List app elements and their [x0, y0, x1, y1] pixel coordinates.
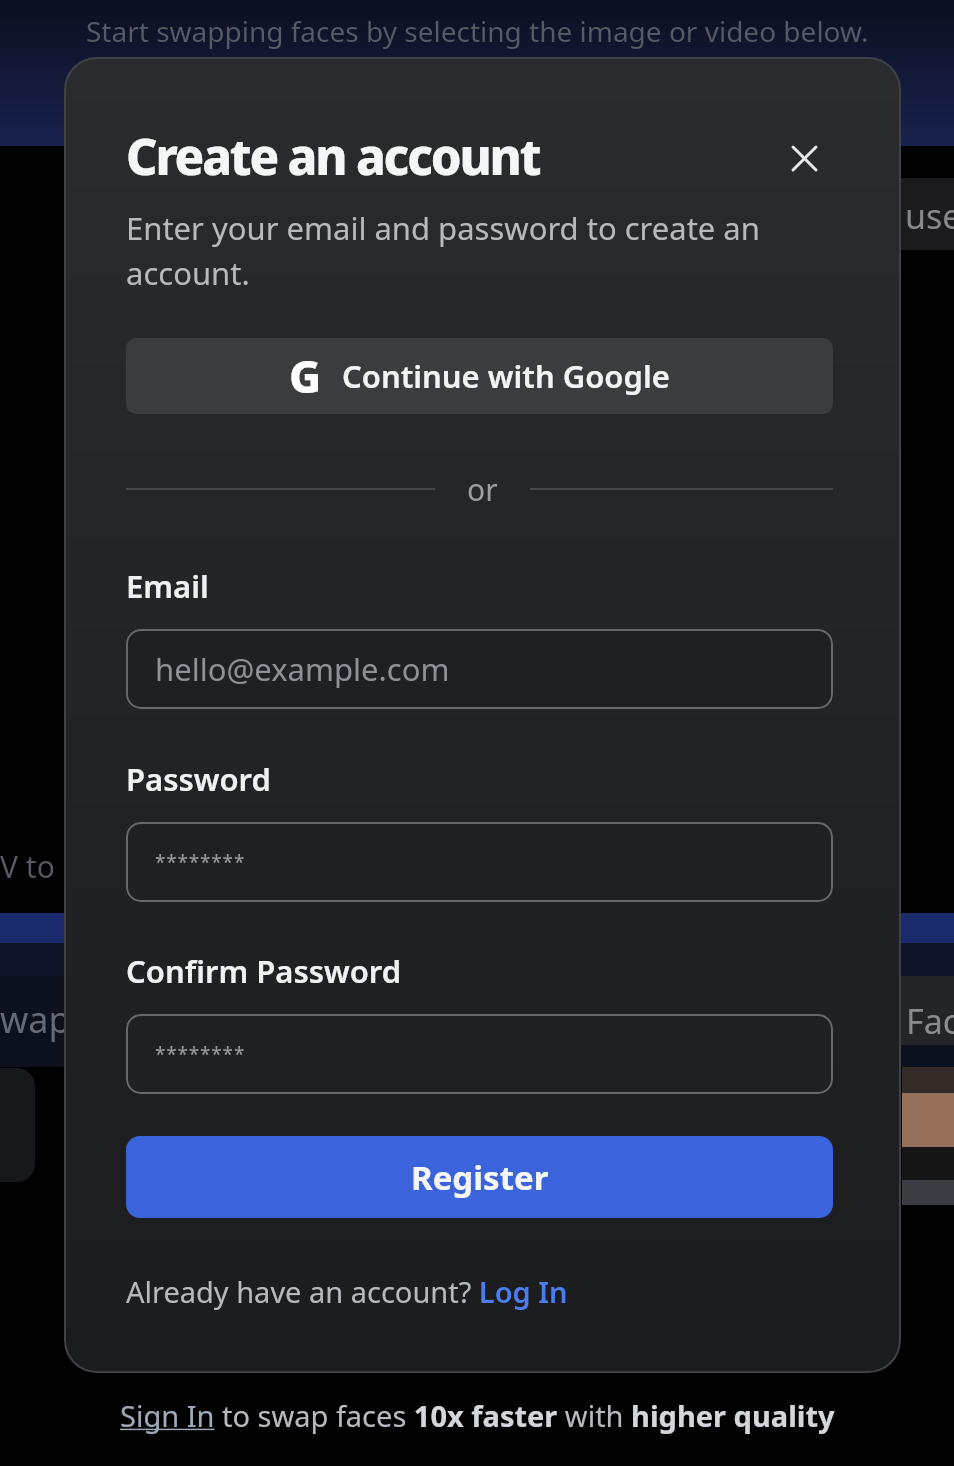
staticText: use: [905, 193, 954, 239]
staticText: wap: [0, 995, 71, 1044]
staticText: Start swapping faces by selecting the im…: [86, 12, 869, 50]
staticText: or: [467, 469, 498, 510]
staticText: Continue with Google: [342, 355, 670, 397]
staticText: V to pa: [0, 846, 98, 887]
button[interactable]: ********: [126, 1014, 833, 1094]
staticText: Face: [906, 998, 954, 1044]
staticText: Confirm Password: [126, 950, 402, 992]
button[interactable]: Register: [126, 1136, 833, 1218]
button[interactable]: ********: [126, 822, 833, 902]
staticText: Create an account: [126, 123, 540, 190]
staticText: Password: [126, 758, 271, 800]
staticText: G: [289, 346, 322, 406]
button[interactable]: G: [126, 338, 833, 414]
button[interactable]: hello@example.com: [126, 629, 833, 709]
staticText: ********: [155, 849, 246, 875]
button[interactable]: [786, 140, 822, 176]
staticText: ********: [155, 1041, 246, 1067]
staticText: Email: [126, 565, 209, 607]
button[interactable]: Sign In to swap faces 10x faster with hi…: [120, 1396, 835, 1435]
button[interactable]: Already have an account? Log In: [126, 1272, 568, 1311]
staticText: Enter your email and password to create …: [126, 207, 760, 294]
staticText: hello@example.com: [155, 648, 450, 690]
staticText: Register: [411, 1155, 549, 1200]
